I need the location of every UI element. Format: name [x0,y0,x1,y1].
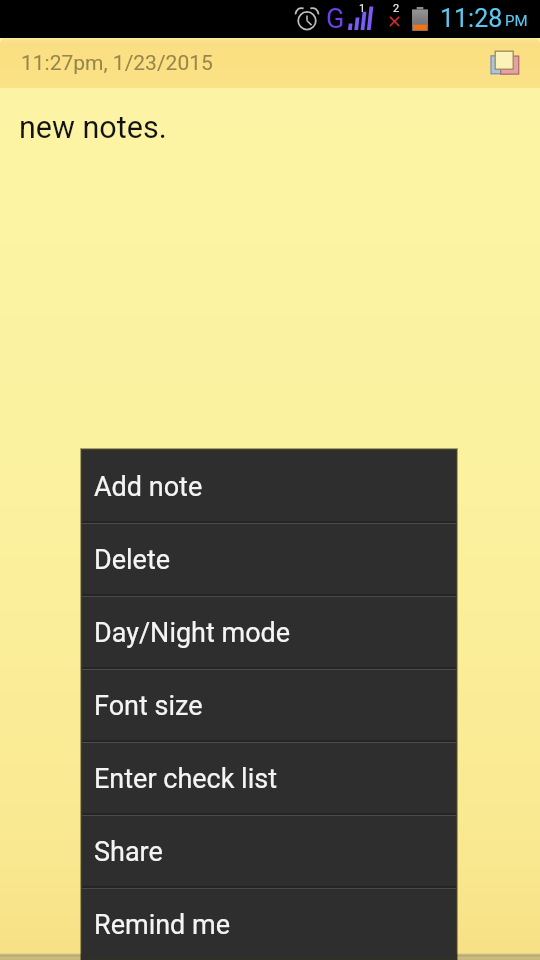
button[interactable]: Enter check list [82,743,456,813]
button[interactable]: Day/Night mode [82,597,456,667]
staticText: ✕ [387,11,403,32]
button[interactable]: Share [82,816,456,886]
staticText: Remind me [94,909,231,941]
staticText: Font size [94,690,203,722]
button[interactable]: Add note [82,450,456,521]
staticText: Enter check list [94,763,277,795]
staticText: 2 [393,2,400,15]
button[interactable]: Notes list [483,38,529,88]
button[interactable]: Remind me [82,889,456,959]
staticText: 11:28 [440,4,503,33]
staticText: Share [94,836,163,868]
staticText: 11:27pm, 1/23/2015 [21,51,213,76]
staticText: G [326,3,345,35]
staticText: 1 [359,2,366,15]
staticText: Day/Night mode [94,617,291,649]
button[interactable]: 11:27pm, 1/23/2015 [0,38,540,88]
button[interactable]: Delete [82,524,456,594]
button[interactable]: Font size [82,670,456,740]
staticText: PM [505,12,528,30]
staticText: Delete [94,544,171,576]
staticText: new notes. [19,110,167,146]
staticText: Add note [94,471,203,503]
